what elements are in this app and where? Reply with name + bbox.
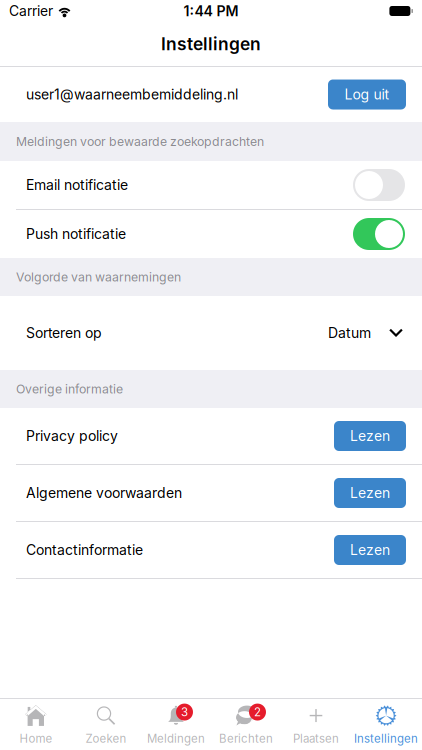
staticText: Carrier (9, 3, 53, 19)
staticText: Lezen (350, 427, 390, 444)
button[interactable]: Lezen (334, 421, 406, 451)
staticText: Sorteren op (26, 324, 102, 341)
staticText: 1:44 PM (183, 2, 238, 19)
staticText: Lezen (350, 484, 390, 501)
button[interactable]: Push notificatie (0, 210, 422, 258)
button[interactable]: Zoeken (71, 699, 141, 750)
staticText: Instellingen (354, 732, 418, 745)
staticText: Meldingen voor bewaarde zoekopdrachten (16, 134, 264, 149)
button[interactable]: Lezen (334, 478, 406, 508)
staticText: Contactinformatie (26, 541, 143, 558)
staticText: Volgorde van waarnemingen (16, 270, 181, 284)
button[interactable]: Email notificatie (0, 161, 422, 209)
staticText: 2 (254, 705, 261, 719)
button[interactable]: Log uit (328, 79, 406, 109)
staticText: Berichten (219, 732, 273, 745)
staticText: Home (19, 732, 52, 745)
button[interactable]: Plaatsen (281, 699, 351, 750)
staticText: 3 (181, 705, 188, 719)
button[interactable]: 2 (211, 699, 281, 750)
staticText: Overige informatie (16, 382, 123, 396)
button[interactable]: 3 (141, 699, 211, 750)
staticText: Meldingen (147, 732, 205, 745)
staticText: Push notificatie (26, 225, 126, 242)
button[interactable]: Sorteren op (0, 296, 422, 370)
staticText: Lezen (350, 541, 390, 558)
button[interactable]: Lezen (334, 535, 406, 565)
staticText: Zoeken (85, 732, 126, 745)
staticText: Email notificatie (26, 176, 128, 193)
staticText: user1@waarneembemiddeling.nl (26, 86, 238, 103)
staticText: Instellingen (161, 33, 261, 54)
staticText: Log uit (344, 86, 389, 103)
button[interactable]: Home (1, 699, 71, 750)
staticText: Plaatsen (293, 732, 339, 745)
staticText: Privacy policy (26, 427, 118, 444)
button[interactable]: Instellingen (351, 699, 421, 750)
staticText: Algemene voorwaarden (26, 484, 182, 501)
staticText: Datum (328, 324, 371, 341)
